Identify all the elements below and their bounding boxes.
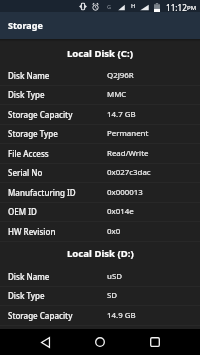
staticText: 0x0 xyxy=(107,226,121,237)
staticText: G xyxy=(107,3,112,10)
button[interactable]: HW Revision xyxy=(0,222,200,242)
staticText: H xyxy=(131,2,136,10)
button[interactable]: Disk Type xyxy=(0,86,200,105)
button[interactable]: Disk Name xyxy=(0,66,200,86)
staticText: Disk Name xyxy=(8,271,50,282)
button[interactable]: Disk Type xyxy=(0,287,200,306)
staticText: SD xyxy=(107,290,118,301)
button[interactable]: File Access xyxy=(0,144,200,164)
staticText: 0x027c3dac xyxy=(107,167,151,178)
button[interactable]: Recent apps xyxy=(132,329,178,355)
staticText: PM xyxy=(187,4,197,12)
staticText: 0x014e xyxy=(107,206,134,217)
staticText: Local Disk (C:) xyxy=(67,47,133,60)
button[interactable]: Disk Name xyxy=(0,267,200,287)
staticText: HW Revision xyxy=(8,226,56,237)
button[interactable]: Back xyxy=(22,329,68,355)
staticText: Permanent xyxy=(107,128,149,139)
staticText: Storage Capacity xyxy=(8,109,73,120)
staticText: uSD xyxy=(107,271,122,282)
staticText: Disk Type xyxy=(8,290,45,301)
button[interactable]: Serial No xyxy=(0,164,200,183)
staticText: Q2J96R xyxy=(107,70,134,81)
staticText: Serial No xyxy=(8,167,43,178)
staticText: 14.9 GB xyxy=(107,310,136,321)
staticText: OEM ID xyxy=(8,206,37,217)
staticText: Disk Name xyxy=(8,70,50,81)
button[interactable]: Home xyxy=(77,329,123,355)
staticText: Read/Write xyxy=(107,148,149,159)
staticText: File Access xyxy=(8,148,49,159)
staticText: 11:12 xyxy=(166,2,187,13)
staticText: Manufacturing ID xyxy=(8,187,76,198)
staticText: Storage Type xyxy=(8,128,58,139)
button[interactable]: Storage Capacity xyxy=(0,306,200,326)
button[interactable]: Manufacturing ID xyxy=(0,183,200,203)
staticText: Local Disk (D:) xyxy=(67,247,134,260)
button[interactable]: Storage xyxy=(0,12,200,39)
staticText: Storage xyxy=(8,19,43,31)
staticText: Disk Type xyxy=(8,89,45,100)
button[interactable]: Storage Capacity xyxy=(0,105,200,125)
staticText: 14.7 GB xyxy=(107,109,136,120)
staticText: 0x000013 xyxy=(107,187,143,198)
button[interactable]: OEM ID xyxy=(0,203,200,222)
staticText: MMC xyxy=(107,89,127,100)
button[interactable]: Storage Type xyxy=(0,125,200,144)
staticText: Storage Capacity xyxy=(8,310,73,321)
